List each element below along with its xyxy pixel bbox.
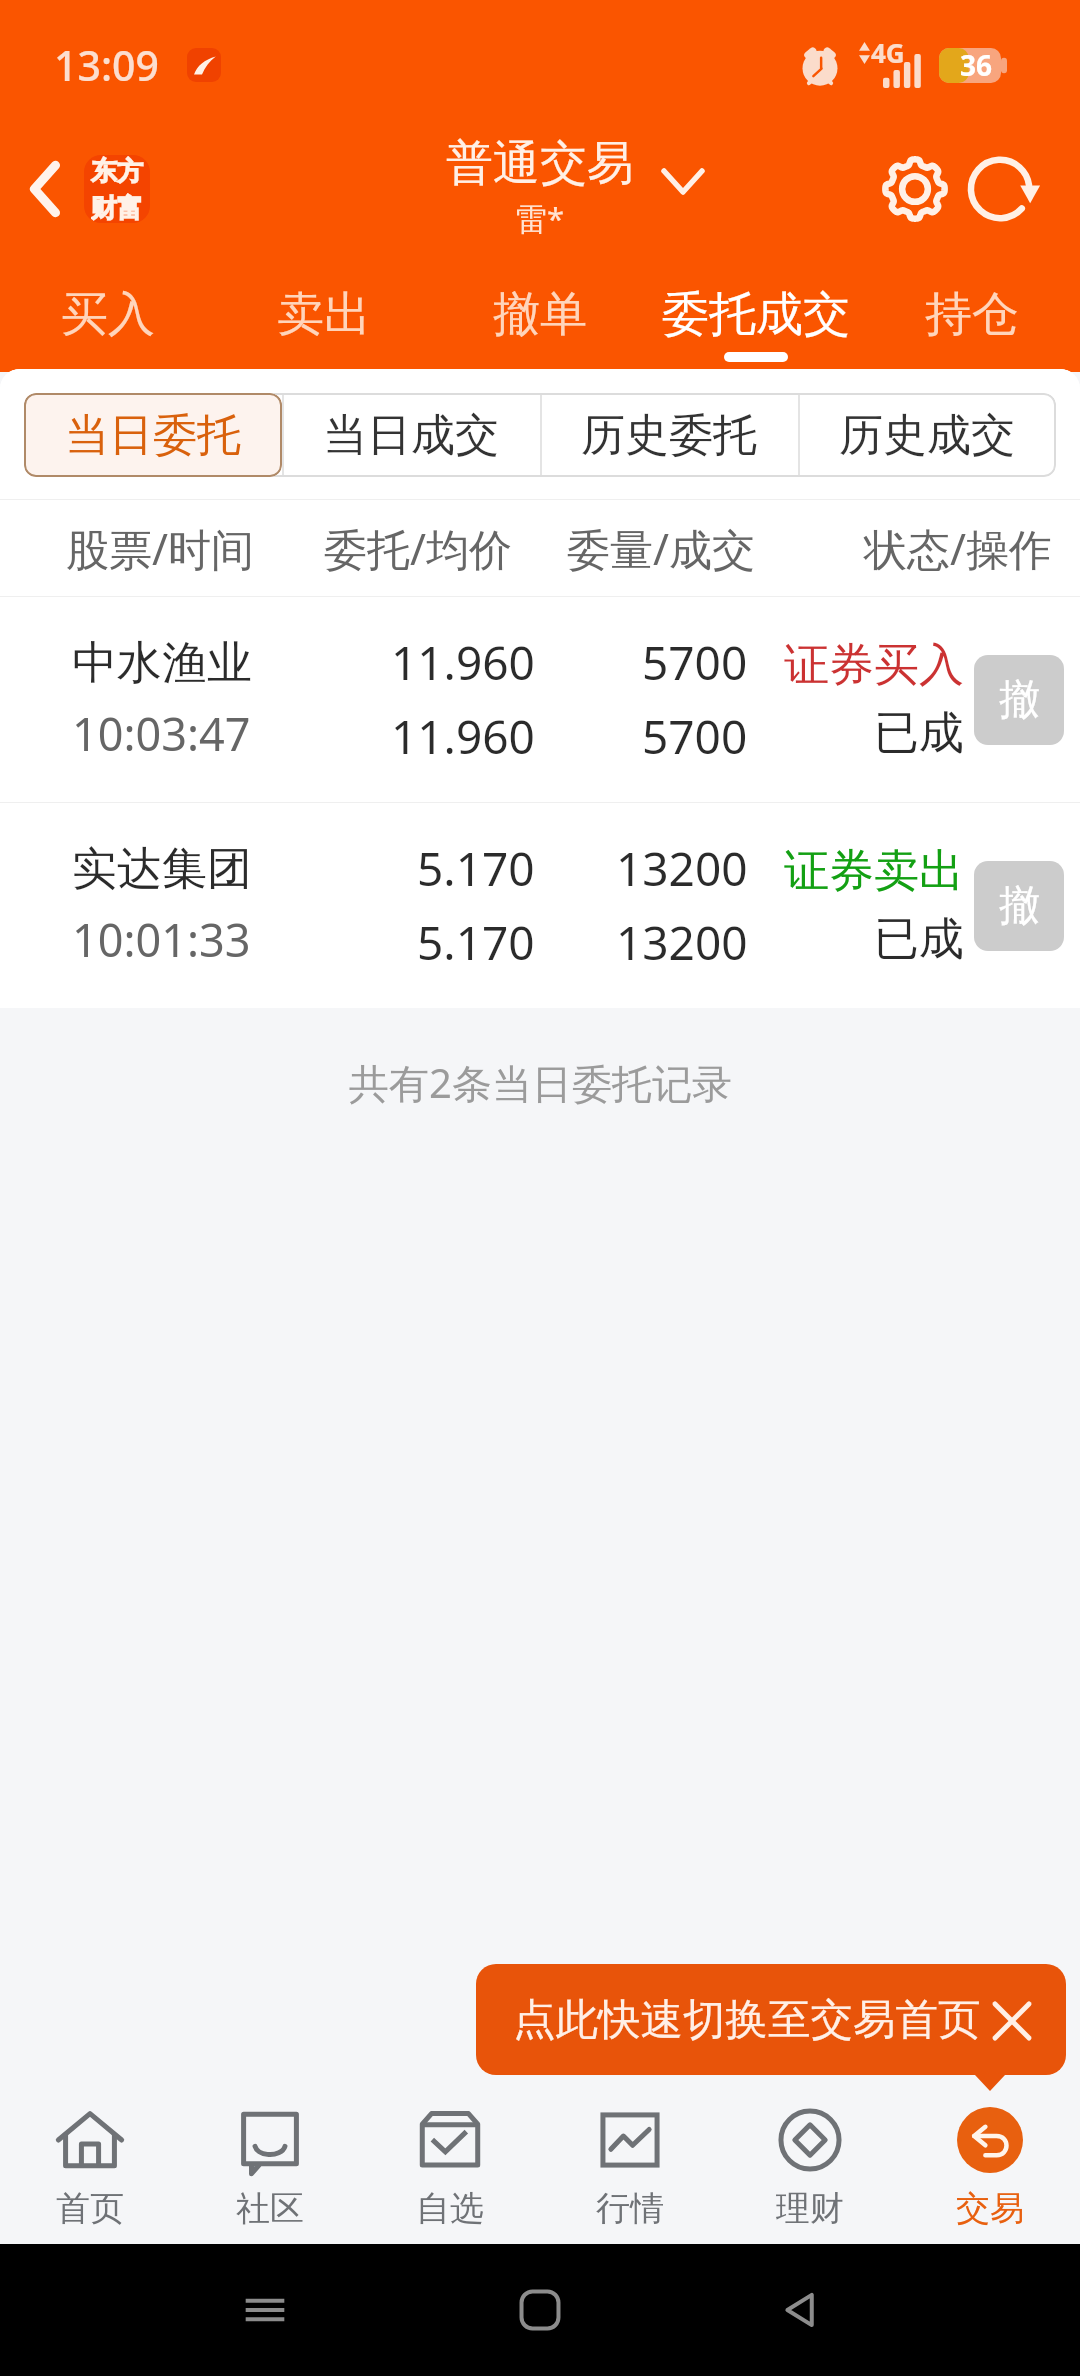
staticText: 5700 <box>642 705 748 768</box>
staticText: 证券卖出 <box>784 843 964 900</box>
staticText: 股票/时间 <box>66 519 254 578</box>
staticText: 交易 <box>956 2187 1024 2230</box>
staticText: 理财 <box>776 2187 844 2230</box>
staticText: 撤单 <box>493 285 587 344</box>
staticText: 行情 <box>596 2187 664 2230</box>
staticText: 5700 <box>642 631 748 694</box>
staticText: 当日成交 <box>323 408 499 463</box>
other: Recents <box>240 2285 290 2335</box>
staticText: 东方 <box>91 155 143 188</box>
button[interactable]: Back <box>0 155 158 223</box>
staticText: 持仓 <box>925 285 1019 344</box>
staticText: 首页 <box>56 2187 124 2230</box>
button[interactable]: 交易 <box>900 2084 1080 2244</box>
staticText: 10:01:33 <box>72 909 251 970</box>
button[interactable] <box>24 393 282 477</box>
staticText: 撤 <box>999 674 1040 726</box>
button[interactable]: 社区 <box>180 2084 360 2244</box>
button[interactable]: 中水渔业 <box>0 597 1080 802</box>
button[interactable]: Switch account <box>655 161 711 201</box>
staticText: 自选 <box>416 2187 484 2230</box>
button[interactable]: 历史成交 <box>798 393 1056 477</box>
staticText: 雷* <box>516 197 565 239</box>
button[interactable]: Close <box>994 2003 1029 2038</box>
staticText: 撤 <box>999 880 1040 932</box>
staticText: 委量/成交 <box>567 519 755 578</box>
button[interactable]: 首页 <box>0 2084 180 2244</box>
staticText: 11.960 <box>391 631 535 694</box>
button[interactable]: 撤 <box>974 655 1064 745</box>
button[interactable]: 撤 <box>974 861 1064 951</box>
button[interactable]: Refresh <box>960 144 1050 234</box>
staticText: 11.960 <box>391 705 535 768</box>
button[interactable]: 持仓 <box>864 262 1080 369</box>
other: Home <box>515 2285 565 2335</box>
staticText: 5.170 <box>417 911 535 974</box>
staticText: 证券买入 <box>784 637 964 694</box>
staticText: 历史委托 <box>581 408 757 463</box>
button[interactable]: 卖出 <box>216 262 432 369</box>
staticText: 点此快速切换至交易首页 <box>513 1993 981 2047</box>
button[interactable]: 自选 <box>360 2084 540 2244</box>
staticText: 5.170 <box>417 837 535 900</box>
staticText: 买入 <box>61 285 155 344</box>
staticText: 已成 <box>874 705 964 762</box>
staticText: 实达集团 <box>72 841 252 898</box>
other: Back <box>775 2285 825 2335</box>
staticText: 36 <box>960 46 993 84</box>
staticText: 13:09 <box>54 37 159 93</box>
staticText: 已成 <box>874 911 964 968</box>
button[interactable]: 当日成交 <box>282 393 540 477</box>
staticText: 中水渔业 <box>72 635 252 692</box>
staticText: 财富 <box>91 192 143 223</box>
button[interactable]: 委托成交 <box>648 262 864 369</box>
staticText: 委托成交 <box>662 285 850 344</box>
button[interactable]: 点此快速切换至交易首页 <box>476 1964 1066 2075</box>
staticText: 共有2条当日委托记录 <box>349 1055 732 1110</box>
button[interactable]: Settings <box>870 144 960 234</box>
staticText: 状态/操作 <box>864 519 1052 578</box>
button[interactable]: 行情 <box>540 2084 720 2244</box>
staticText: 13200 <box>616 911 748 974</box>
staticText: 卖出 <box>277 285 371 344</box>
other: Back <box>20 157 68 221</box>
button[interactable]: 实达集团 <box>0 803 1080 1008</box>
staticText: 委托/均价 <box>324 519 512 578</box>
button[interactable]: 当日委托 <box>24 393 282 477</box>
staticText: 普通交易 <box>446 134 634 193</box>
staticText: 社区 <box>236 2187 304 2230</box>
staticText: 当日委托 <box>65 408 241 463</box>
button[interactable]: 理财 <box>720 2084 900 2244</box>
staticText: 4G <box>871 35 905 70</box>
button[interactable]: 历史委托 <box>540 393 798 477</box>
button[interactable]: 撤单 <box>432 262 648 369</box>
button[interactable]: 买入 <box>0 262 216 369</box>
staticText: 13200 <box>616 837 748 900</box>
staticText: 10:03:47 <box>72 703 251 764</box>
staticText: 历史成交 <box>839 408 1015 463</box>
